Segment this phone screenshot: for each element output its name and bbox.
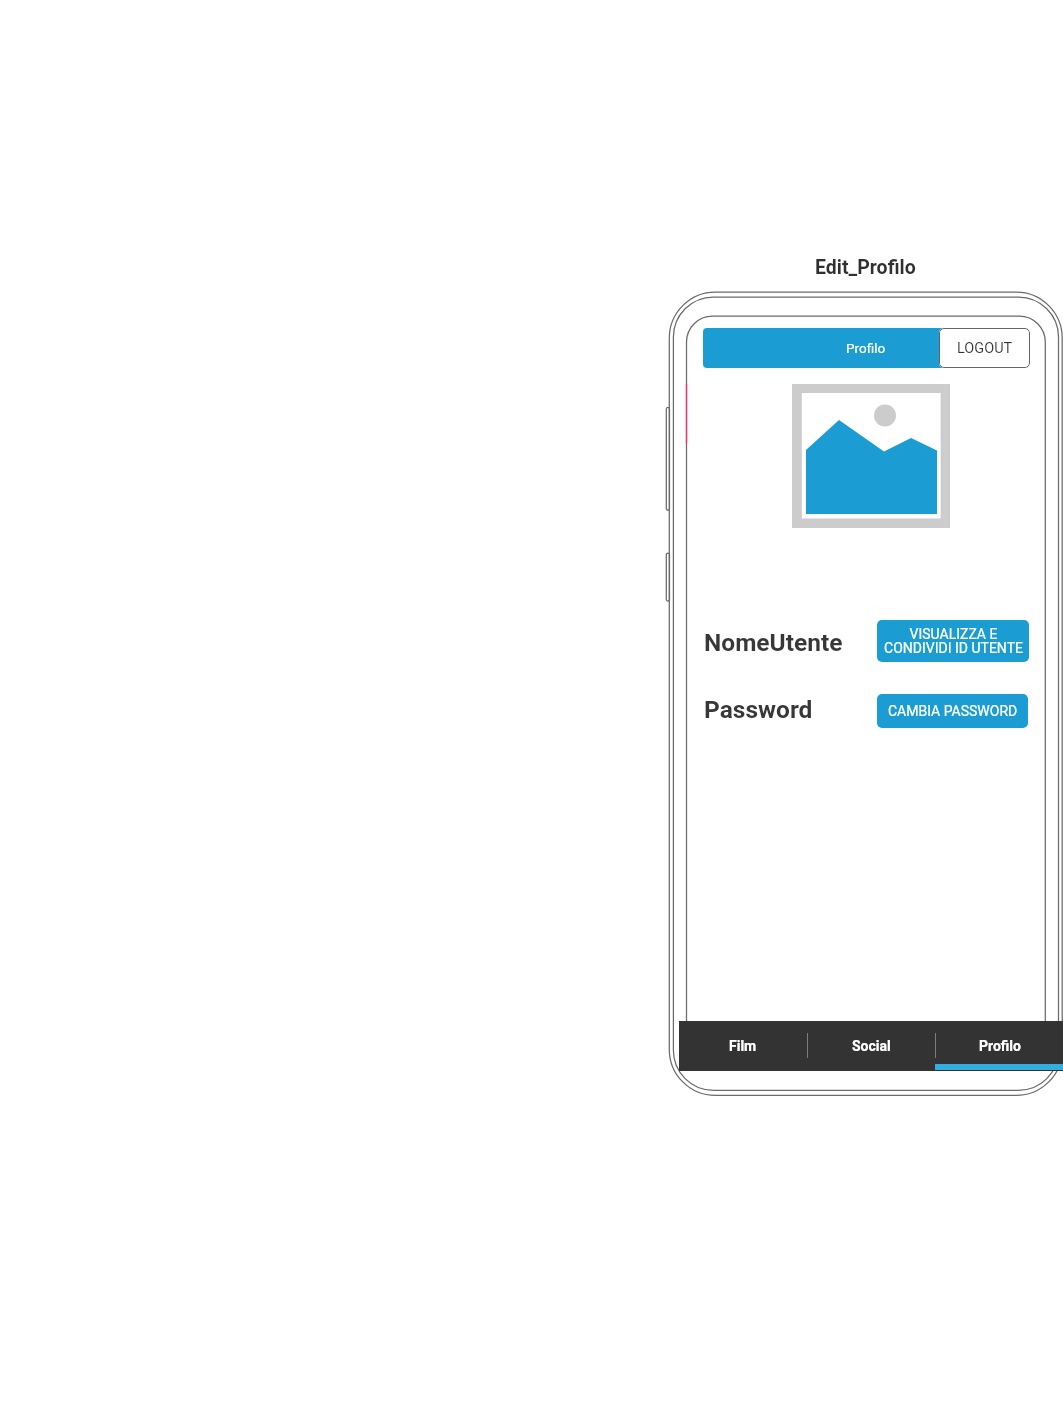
- staticText: Film: [729, 1038, 757, 1054]
- button[interactable]: VISUALIZZA E CONDIVIDI ID UTENTE: [877, 620, 1029, 662]
- staticText: Password: [704, 695, 813, 724]
- button[interactable]: Immagine profilo: [792, 384, 950, 528]
- staticText: CAMBIA PASSWORD: [888, 703, 1018, 719]
- staticText: Edit_Profilo: [815, 256, 916, 279]
- button[interactable]: LOGOUT: [939, 328, 1030, 368]
- staticText: Profilo: [846, 340, 886, 356]
- staticText: Profilo: [979, 1038, 1021, 1054]
- button[interactable]: Social: [808, 1021, 935, 1071]
- button[interactable]: CAMBIA PASSWORD: [877, 694, 1028, 728]
- button[interactable]: Profilo: [703, 328, 1029, 368]
- button[interactable]: Profilo: [936, 1021, 1063, 1071]
- staticText: VISUALIZZA E CONDIVIDI ID UTENTE: [884, 626, 1023, 657]
- staticText: LOGOUT: [957, 340, 1013, 357]
- staticText: Social: [852, 1038, 891, 1054]
- staticText: NomeUtente: [704, 628, 843, 657]
- button[interactable]: Film: [679, 1021, 807, 1071]
